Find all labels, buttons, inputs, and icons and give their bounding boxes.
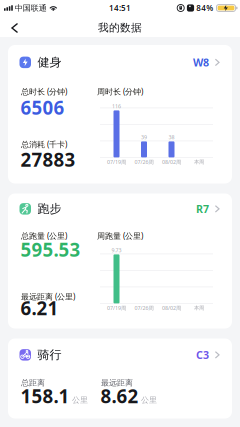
staticText: 总距离: [21, 378, 45, 388]
staticText: 本周: [194, 305, 204, 311]
staticText: 周时长 (分钟): [97, 86, 143, 97]
staticText: 总时长 (分钟): [21, 86, 67, 97]
staticText: 07/19周: [107, 158, 126, 166]
staticText: 158.1: [20, 383, 69, 408]
staticText: 8.62: [100, 383, 138, 408]
staticText: 84%: [196, 3, 213, 13]
button[interactable]: 跑步: [8, 193, 232, 328]
staticText: 我的数据: [98, 21, 142, 34]
staticText: 39: [141, 134, 147, 141]
staticText: 14:51: [109, 3, 131, 13]
staticText: 本周: [194, 159, 204, 165]
staticText: 08/02周: [162, 304, 181, 312]
staticText: R7: [196, 202, 209, 216]
staticText: 健身: [37, 55, 61, 70]
staticText: 公里: [72, 395, 88, 405]
staticText: 最远距离 (公里): [21, 291, 75, 302]
staticText: 6.21: [20, 295, 58, 320]
staticText: C3: [196, 348, 209, 362]
staticText: 骑行: [37, 347, 61, 362]
staticText: 最远距离: [101, 378, 133, 388]
staticText: 周跑量 (公里): [97, 230, 143, 241]
staticText: 27883: [20, 147, 75, 172]
staticText: 跑步: [37, 201, 61, 216]
staticText: 07/26周: [134, 304, 153, 312]
staticText: 116: [112, 103, 121, 110]
button[interactable]: 健身: [8, 45, 232, 183]
staticText: 08/02周: [162, 158, 181, 166]
staticText: 总跑量 (公里): [21, 230, 67, 241]
staticText: W8: [193, 55, 209, 69]
staticText: 595.53: [20, 237, 80, 262]
staticText: 9.73: [111, 247, 121, 254]
button[interactable]: Back: [0, 16, 17, 36]
staticText: 38: [168, 134, 174, 141]
staticText: 07/26周: [134, 158, 153, 166]
staticText: 中国联通: [15, 3, 47, 13]
staticText: 07/19周: [107, 304, 126, 312]
staticText: 公里: [141, 395, 157, 405]
staticText: 总消耗 (千卡): [21, 139, 67, 150]
staticText: 6506: [20, 95, 64, 120]
button[interactable]: 骑行: [8, 338, 232, 418]
